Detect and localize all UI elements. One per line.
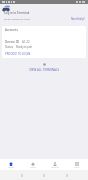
button[interactable]: Home bbox=[0, 159, 22, 170]
staticText: A1-22 bbox=[22, 40, 30, 44]
staticText: Ready to pair bbox=[16, 45, 33, 49]
button[interactable]: Account bbox=[44, 159, 66, 170]
staticText: Alerts bbox=[30, 166, 36, 169]
button[interactable]: PROCEED TO LOGIN bbox=[5, 52, 31, 56]
staticText: Account bbox=[51, 166, 59, 169]
button[interactable]: Alerts bbox=[22, 159, 44, 170]
staticText: PROCEED TO LOGIN bbox=[5, 52, 31, 56]
staticText: Log in to Terminal bbox=[4, 11, 30, 15]
staticText: Status bbox=[5, 45, 14, 49]
button[interactable]: More bbox=[66, 159, 88, 170]
staticText: Device ID bbox=[5, 40, 20, 44]
staticText: SELECT MODE TO START bbox=[4, 18, 30, 21]
staticText: VIEW ALL TERMINALS bbox=[29, 68, 60, 72]
staticText: Accounts bbox=[5, 28, 18, 32]
button[interactable]: VIEW ALL TERMINALS bbox=[0, 63, 88, 72]
staticText: Need help? bbox=[71, 17, 85, 21]
staticText: Home bbox=[8, 166, 14, 169]
staticText: More bbox=[74, 166, 80, 169]
